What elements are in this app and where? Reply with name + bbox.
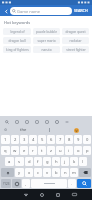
button[interactable]: w	[11, 146, 19, 155]
staticText: Hot keywords	[4, 20, 31, 25]
button[interactable]: 2	[11, 135, 19, 144]
staticText: dragon ball	[8, 39, 26, 43]
button[interactable]: l	[79, 157, 87, 166]
button[interactable]: .	[68, 179, 76, 188]
button[interactable]: Emoji	[63, 126, 90, 134]
staticText: u	[59, 148, 62, 154]
button[interactable]: Backspace	[79, 168, 91, 177]
staticText: e	[23, 148, 26, 154]
button[interactable]: street fighter	[62, 46, 89, 53]
button[interactable]: Keyboard tool 2	[13, 118, 20, 125]
button[interactable]: e	[20, 146, 28, 155]
button[interactable]: n	[61, 168, 69, 177]
staticText: l	[82, 159, 84, 165]
button[interactable]: s	[15, 157, 24, 166]
staticText: r	[32, 148, 34, 154]
button[interactable]: Keyboard tool 5	[43, 118, 50, 125]
staticText: n	[64, 170, 67, 176]
button[interactable]: SEARCH	[72, 5, 90, 16]
staticText: d	[28, 159, 31, 165]
button[interactable]: Keyboard tool 7	[63, 118, 70, 125]
staticText: o	[77, 148, 80, 154]
button[interactable]: 8	[65, 135, 73, 144]
staticText: naruto	[41, 48, 52, 52]
button[interactable]: ,	[22, 179, 30, 188]
button[interactable]: Back	[2, 7, 10, 15]
staticText: h	[55, 159, 58, 165]
staticText: street fighter	[66, 48, 86, 52]
button[interactable]: 1	[1, 135, 10, 144]
button[interactable]: Search	[77, 179, 91, 188]
button[interactable]: dragon ball	[3, 37, 31, 44]
staticText: 7	[59, 137, 62, 143]
staticText: the	[20, 127, 27, 133]
button[interactable]: d	[25, 157, 33, 166]
button[interactable]: legend of	[3, 28, 31, 35]
button[interactable]: rockstar	[62, 37, 89, 44]
button[interactable]: p	[83, 146, 91, 155]
button[interactable]: i	[65, 146, 73, 155]
button[interactable]: puzzle bubble	[33, 28, 60, 35]
staticText: king of fighters	[6, 48, 29, 52]
button[interactable]: ?123	[1, 179, 11, 188]
button[interactable]: 6	[47, 135, 55, 144]
button[interactable]: the	[10, 126, 36, 134]
button[interactable]: k	[70, 157, 78, 166]
button[interactable]: u	[56, 146, 64, 155]
button[interactable]: 5	[38, 135, 46, 144]
button[interactable]	[36, 126, 63, 134]
button[interactable]: r	[29, 146, 37, 155]
staticText: k	[73, 159, 76, 165]
button[interactable]: o	[74, 146, 82, 155]
button[interactable]: 3	[20, 135, 28, 144]
staticText: rockstar	[69, 39, 82, 43]
staticText: Game name	[17, 9, 40, 14]
button[interactable]: h	[52, 157, 60, 166]
button[interactable]: 9	[74, 135, 82, 144]
button[interactable]: q	[1, 146, 10, 155]
button[interactable]: dragon quest	[62, 28, 89, 35]
staticText: legend of	[10, 30, 25, 34]
button[interactable]: Recent apps	[50, 189, 66, 200]
staticText: m	[72, 170, 76, 176]
button[interactable]: Back	[18, 189, 34, 200]
button[interactable]: Game name	[10, 7, 72, 15]
button[interactable]: 0	[83, 135, 91, 144]
button[interactable]: x	[25, 168, 33, 177]
button[interactable]: king of fighters	[3, 46, 31, 53]
button[interactable]: b	[52, 168, 60, 177]
button[interactable]: Keyboard tool 1	[3, 118, 10, 125]
button[interactable]: c	[34, 168, 42, 177]
button[interactable]: Hide keyboard	[66, 189, 82, 200]
staticText: SEARCH	[74, 8, 88, 13]
button[interactable]: m	[70, 168, 78, 177]
button[interactable]: f	[34, 157, 42, 166]
staticText: puzzle bubble	[36, 30, 57, 34]
button[interactable]: a	[5, 157, 14, 166]
button[interactable]: 4	[29, 135, 37, 144]
button[interactable]: Shift	[1, 168, 14, 177]
button[interactable]: g	[43, 157, 51, 166]
button[interactable]: j	[61, 157, 69, 166]
button[interactable]: Keyboard tool 3	[23, 118, 30, 125]
button[interactable]: Settings	[2, 126, 10, 134]
button[interactable]: v	[43, 168, 51, 177]
staticText: 5	[41, 137, 44, 143]
button[interactable]: 7	[56, 135, 64, 144]
button[interactable]: t	[38, 146, 46, 155]
button[interactable]: Home	[34, 189, 50, 200]
staticText: 3	[23, 137, 26, 143]
button[interactable]: Keyboard tool 6	[53, 118, 60, 125]
staticText: f	[37, 159, 39, 165]
button[interactable]: Emoji keyboard	[12, 179, 21, 188]
button[interactable]: Space	[31, 179, 67, 188]
staticText: y	[18, 170, 21, 176]
button[interactable]: z	[47, 146, 55, 155]
button[interactable]: Keyboard tool 4	[33, 118, 40, 125]
staticText: 6	[50, 137, 53, 143]
staticText: 2	[14, 137, 17, 143]
staticText: ,	[25, 181, 27, 186]
button[interactable]: y	[15, 168, 24, 177]
button[interactable]: naruto	[33, 46, 60, 53]
button[interactable]: super mario	[33, 37, 60, 44]
